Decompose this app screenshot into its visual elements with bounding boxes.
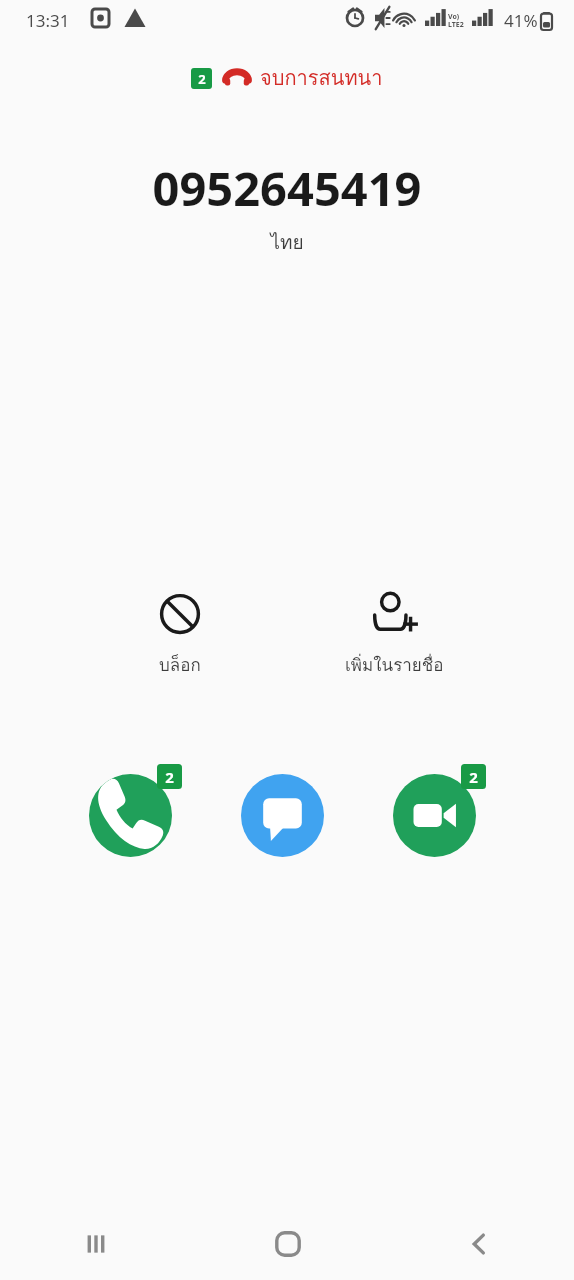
staticText: เพิ่มในรายชื่อ <box>345 651 444 678</box>
staticText: 0952645419 <box>0 156 574 220</box>
button[interactable]: Home <box>192 1208 383 1280</box>
staticText: 2 <box>469 767 478 787</box>
button[interactable]: Message <box>241 774 324 857</box>
button[interactable]: เพิ่มในรายชื่อ <box>319 591 469 678</box>
button[interactable]: Recents <box>0 1208 192 1280</box>
staticText: จบการสนทนา <box>260 62 383 94</box>
staticText: 13:31 <box>26 9 70 32</box>
button[interactable]: บล็อก <box>105 591 255 678</box>
staticText: Vo) LTE2 <box>448 12 464 29</box>
staticText: 41% <box>504 9 538 32</box>
staticText: 2 <box>165 767 174 787</box>
staticText: ไทย <box>0 227 574 257</box>
button[interactable]: Call <box>89 774 172 857</box>
staticText: 2 <box>198 70 206 88</box>
button[interactable]: Back <box>383 1208 574 1280</box>
button[interactable]: Video call <box>393 774 476 857</box>
staticText: บล็อก <box>159 651 201 678</box>
